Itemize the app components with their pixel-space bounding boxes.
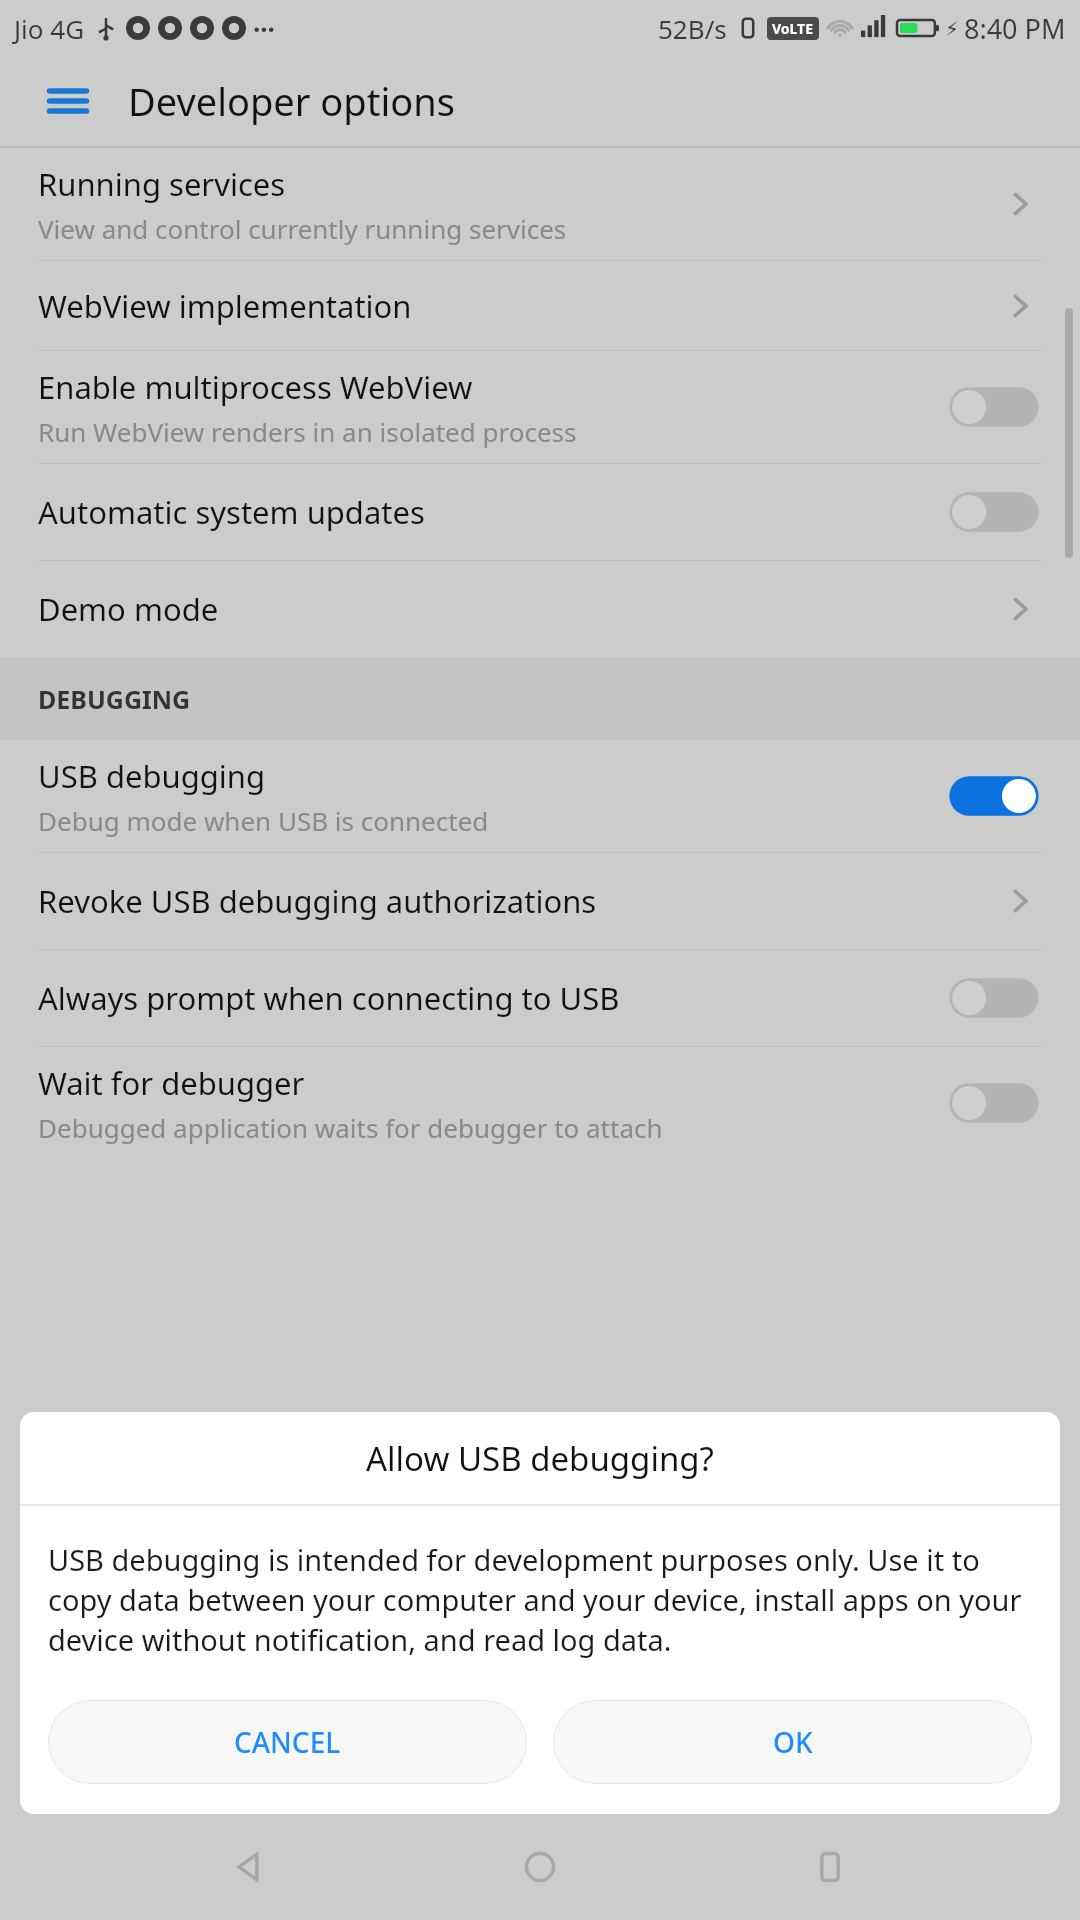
other: Open [998, 284, 1042, 328]
button[interactable]: Back [210, 1827, 290, 1907]
button[interactable]: WebView implementation [0, 261, 1080, 350]
button[interactable]: Automatic system updates [0, 464, 1080, 560]
staticText: DEBUGGING [38, 682, 191, 716]
staticText: USB debugging is intended for developmen… [48, 1540, 1032, 1660]
button[interactable]: Menu [38, 71, 98, 131]
staticText: 52B/s [658, 11, 727, 46]
staticText: Run WebView renders in an isolated proce… [38, 414, 577, 449]
staticText: Running services [38, 163, 286, 205]
button[interactable]: Toggle on [946, 770, 1042, 822]
other: Open [998, 182, 1042, 226]
staticText: Enable multiprocess WebView [38, 366, 473, 408]
staticText: ⚡ [945, 17, 960, 40]
staticText: Automatic system updates [38, 491, 425, 533]
button[interactable]: USB debugging [0, 740, 1080, 852]
staticText: Demo mode [38, 588, 219, 630]
staticText: Developer options [128, 75, 455, 127]
button[interactable]: Recents [790, 1827, 870, 1907]
button[interactable]: Toggle off [946, 1077, 1042, 1129]
other: Open [998, 879, 1042, 923]
button[interactable]: Revoke USB debugging authorizations [0, 853, 1080, 949]
staticText: 8:40 PM [964, 10, 1066, 47]
staticText: VoLTE [772, 19, 814, 38]
button[interactable]: Wait for debugger [0, 1047, 1080, 1159]
button[interactable]: Demo mode [0, 561, 1080, 657]
button[interactable]: CANCEL [48, 1700, 527, 1784]
other: Open [998, 587, 1042, 631]
button[interactable]: Toggle off [946, 381, 1042, 433]
button[interactable]: Toggle off [946, 486, 1042, 538]
button[interactable]: Running services [0, 148, 1080, 260]
staticText: ··· [253, 11, 275, 46]
staticText: CANCEL [234, 1723, 341, 1761]
button[interactable]: Always prompt when connecting to USB [0, 950, 1080, 1046]
staticText: Debug mode when USB is connected [38, 803, 489, 838]
staticText: Debugged application waits for debugger … [38, 1110, 663, 1145]
staticText: USB debugging [38, 755, 266, 797]
button[interactable]: Enable multiprocess WebView [0, 351, 1080, 463]
staticText: Wait for debugger [38, 1062, 305, 1104]
staticText: Allow USB debugging? [366, 1436, 714, 1481]
button[interactable]: Home [500, 1827, 580, 1907]
staticText: Revoke USB debugging authorizations [38, 880, 597, 922]
button[interactable]: Toggle off [946, 972, 1042, 1024]
staticText: Jio 4G [14, 11, 85, 46]
staticText: WebView implementation [38, 285, 412, 327]
staticText: Always prompt when connecting to USB [38, 977, 620, 1019]
button[interactable]: OK [553, 1700, 1032, 1784]
staticText: View and control currently running servi… [38, 211, 567, 246]
staticText: OK [773, 1723, 813, 1761]
